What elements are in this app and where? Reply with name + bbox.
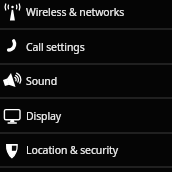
- staticText: Location & security: [26, 143, 119, 157]
- button[interactable]: Wireless & networks: [0, 0, 172, 29]
- button[interactable]: Sound: [0, 63, 172, 98]
- staticText: Sound: [26, 74, 58, 88]
- staticText: Display: [26, 109, 62, 123]
- button[interactable]: Location & security: [0, 132, 172, 167]
- button[interactable]: [0, 167, 172, 172]
- staticText: Wireless & networks: [26, 5, 125, 19]
- button[interactable]: Call settings: [0, 29, 172, 64]
- staticText: Call settings: [26, 40, 85, 54]
- button[interactable]: Display: [0, 98, 172, 133]
